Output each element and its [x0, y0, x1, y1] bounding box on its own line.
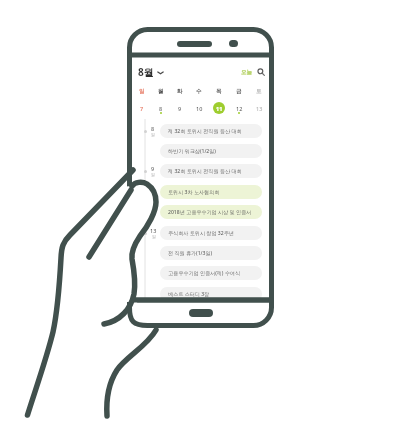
button[interactable]: 13 — [249, 101, 269, 115]
button[interactable]: 2018년 고용우수기업 시상 및 인증서 — [160, 205, 262, 219]
staticText: 베스트 스터디 3장 — [168, 291, 210, 298]
staticText: 화 — [177, 88, 183, 95]
staticText: 하반기 워크샵(1/2일) — [168, 148, 216, 155]
staticText: 2018년 고용우수기업 시상 및 인증서 — [168, 209, 252, 216]
staticText: 주식회사 토위시 창업 32주년 — [168, 230, 234, 237]
button[interactable]: 8월 — [138, 65, 164, 79]
button[interactable]: 11 — [209, 101, 229, 115]
staticText: 전 직원 휴가(1/3일) — [168, 250, 213, 257]
staticText: 12 — [236, 105, 243, 112]
button[interactable]: 7 — [132, 101, 151, 115]
button[interactable]: 8 — [151, 101, 170, 115]
staticText: 일 — [151, 172, 155, 177]
staticText: 8 — [151, 125, 155, 132]
staticText: 9 — [178, 105, 182, 112]
staticText: 8 — [159, 105, 163, 112]
staticText: 토 — [256, 88, 262, 95]
staticText: 7 — [140, 105, 144, 112]
button[interactable]: 주식회사 토위시 창업 32주년 — [160, 226, 262, 240]
button[interactable]: 제 32회 토위시 전직원 등산 대회 — [160, 164, 262, 178]
button[interactable]: 토위시 3차 노사협의회 — [160, 185, 262, 199]
staticText: 일 — [151, 132, 155, 137]
button[interactable]: 하반기 워크샵(1/2일) — [160, 144, 262, 158]
button[interactable]: 제 32회 토위시 전직원 등산 대회 — [160, 124, 262, 138]
staticText: 일 — [139, 88, 145, 95]
staticText: 토위시 3차 노사협의회 — [168, 189, 220, 196]
button[interactable]: 오늘 — [241, 69, 252, 76]
staticText: 고용우수기업 인증서(제) 수여식 — [168, 270, 241, 277]
staticText: 목 — [216, 88, 222, 95]
staticText: 9 — [151, 165, 155, 172]
button[interactable]: 10 — [189, 101, 209, 115]
button[interactable]: 고용우수기업 인증서(제) 수여식 — [160, 266, 262, 280]
staticText: 13 — [150, 227, 157, 234]
button[interactable]: 9 — [170, 101, 189, 115]
button[interactable]: 전 직원 휴가(1/3일) — [160, 246, 262, 260]
staticText: 월 — [158, 88, 164, 95]
staticText: 일 — [152, 234, 156, 239]
staticText: 제 32회 토위시 전직원 등산 대회 — [168, 168, 242, 175]
staticText: 제 32회 토위시 전직원 등산 대회 — [168, 128, 242, 135]
staticText: 오늘 — [241, 69, 252, 76]
staticText: 10 — [196, 105, 203, 112]
staticText: 11 — [216, 105, 223, 112]
staticText: 금 — [236, 88, 242, 95]
staticText: 8월 — [138, 65, 154, 79]
staticText: 수 — [196, 88, 202, 95]
button[interactable]: Search — [257, 68, 265, 76]
button[interactable]: 12 — [229, 101, 249, 115]
staticText: 13 — [256, 105, 263, 112]
button[interactable]: 베스트 스터디 3장 — [160, 287, 262, 301]
